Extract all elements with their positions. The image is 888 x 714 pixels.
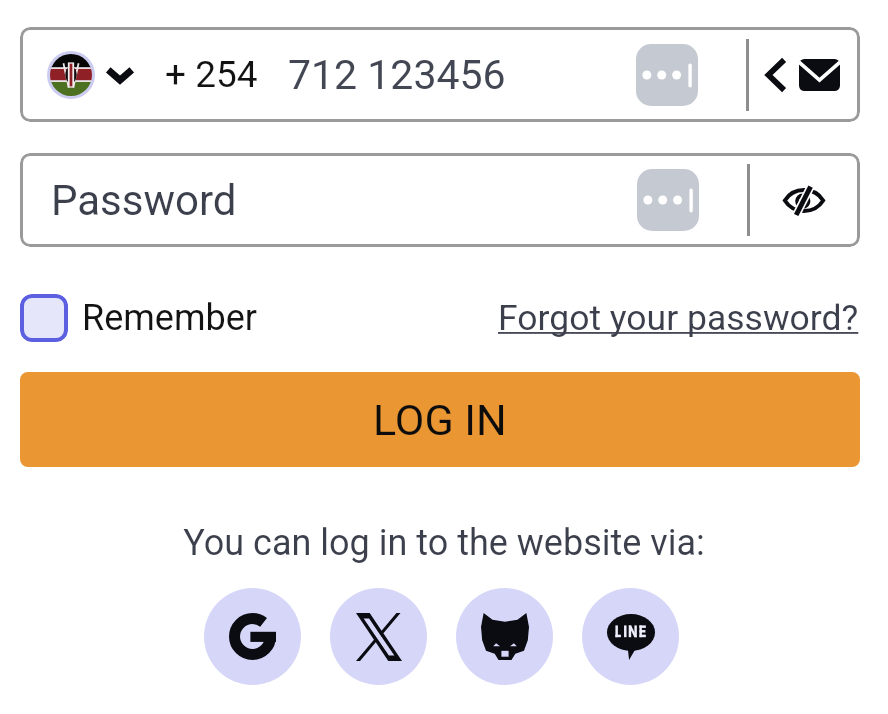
button[interactable]: Autofill <box>637 169 699 231</box>
button[interactable]: Use email instead <box>767 59 840 91</box>
button[interactable]: Forgot your password? <box>498 297 859 339</box>
staticText: 712 123456 <box>288 51 506 99</box>
staticText: Forgot your password? <box>498 297 859 339</box>
button[interactable]: Remember <box>20 294 258 342</box>
button[interactable]: Log in with Google <box>204 588 301 685</box>
button[interactable]: Password <box>20 153 860 247</box>
staticText: You can log in to the website via: <box>0 522 888 564</box>
staticText: LOG IN <box>373 395 507 445</box>
staticText: Remember <box>82 297 258 339</box>
button[interactable]: Log in with X <box>330 588 427 685</box>
staticText: + 254 <box>165 53 258 96</box>
button[interactable]: Show password <box>784 186 824 215</box>
button[interactable]: Log in with MetaMask <box>456 588 553 685</box>
button[interactable]: Autofill <box>636 44 698 106</box>
button[interactable]: Log in with LINE <box>582 588 679 685</box>
staticText: Password <box>51 176 237 225</box>
button[interactable]: LOG IN <box>20 372 860 467</box>
button[interactable]: + 254 <box>20 27 860 122</box>
